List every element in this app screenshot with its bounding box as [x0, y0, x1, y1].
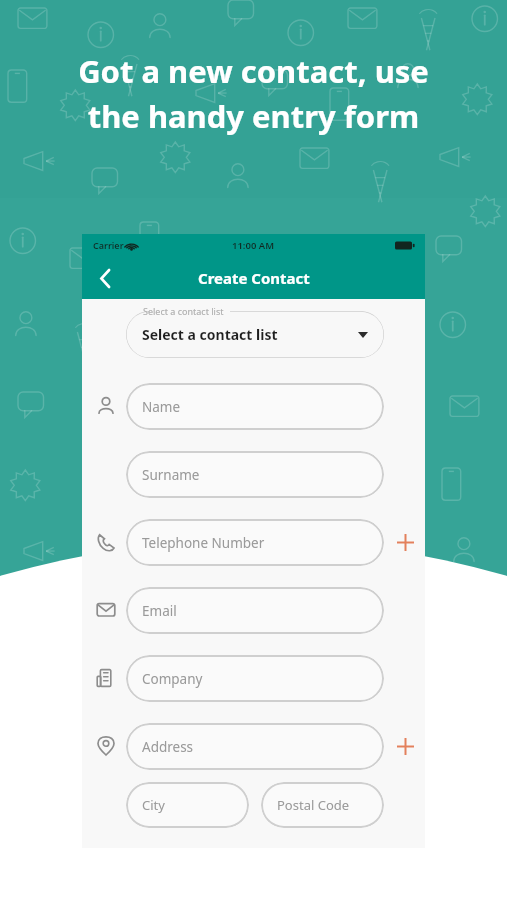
button[interactable]: Surname	[126, 451, 384, 498]
button[interactable]: Name	[126, 383, 384, 430]
button[interactable]: Add another Address	[392, 733, 418, 759]
staticText: Email	[142, 602, 177, 620]
staticText: Company	[142, 670, 203, 688]
staticText: Name	[142, 398, 181, 416]
staticText: Postal Code	[277, 796, 350, 814]
staticText: Create Contact	[198, 268, 310, 288]
staticText: Got a new contact, use the handy entry f…	[16, 50, 491, 137]
staticText: City	[142, 796, 165, 814]
staticText: Address	[142, 738, 194, 756]
button[interactable]: Telephone Number	[126, 519, 384, 566]
staticText: Carrier	[93, 239, 124, 251]
staticText: Surname	[142, 466, 200, 484]
button[interactable]: Add another Telephone Number	[392, 529, 418, 555]
button[interactable]: Back	[92, 265, 118, 291]
button[interactable]: City	[126, 782, 249, 828]
staticText: 11:00 AM	[232, 239, 275, 252]
staticText: Select a contact list	[142, 325, 278, 344]
button[interactable]: Select a contact list	[126, 311, 384, 358]
button[interactable]: Company	[126, 655, 384, 702]
staticText: Select a contact list	[143, 305, 224, 317]
button[interactable]: Address	[126, 723, 384, 770]
button[interactable]: Postal Code	[261, 782, 384, 828]
staticText: Telephone Number	[142, 534, 265, 552]
button[interactable]: Email	[126, 587, 384, 634]
